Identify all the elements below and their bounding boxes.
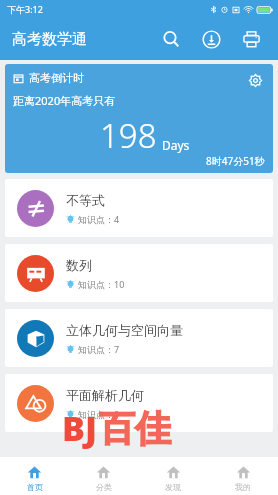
button[interactable]: Download: [194, 22, 228, 56]
button[interactable]: 高考倒计时: [5, 64, 273, 173]
staticText: 198: [100, 113, 157, 158]
staticText: 8时47分51秒: [206, 154, 265, 168]
staticText: 知识点：7: [78, 343, 120, 355]
button[interactable]: 发现: [138, 457, 208, 495]
button[interactable]: 数列: [5, 244, 273, 302]
staticText: 知识点：4: [78, 213, 120, 225]
button[interactable]: Print: [234, 22, 268, 56]
staticText: 不等式: [66, 192, 105, 208]
button[interactable]: 分类: [69, 457, 138, 495]
staticText: 高考倒计时: [29, 71, 84, 85]
button[interactable]: 不等式: [5, 179, 273, 237]
staticText: 知识点：9: [78, 408, 120, 420]
staticText: 我的: [235, 482, 251, 492]
staticText: 下午3:12: [7, 3, 43, 15]
button[interactable]: 平面解析几何: [5, 374, 273, 432]
staticText: 百佳: [99, 406, 171, 451]
button[interactable]: 首页: [0, 457, 69, 495]
button[interactable]: 立体几何与空间向量: [5, 309, 273, 367]
button[interactable]: Settings: [243, 68, 267, 92]
staticText: 发现: [165, 482, 181, 492]
button[interactable]: 我的: [208, 457, 278, 495]
staticText: 数列: [66, 257, 92, 273]
staticText: BJ: [62, 405, 97, 451]
staticText: 距离2020年高考只有: [13, 93, 116, 108]
button[interactable]: Search: [154, 22, 188, 56]
staticText: 平面解析几何: [66, 387, 144, 403]
staticText: 知识点：10: [78, 278, 125, 290]
staticText: 立体几何与空间向量: [66, 322, 183, 338]
staticText: Days: [162, 137, 190, 153]
staticText: 首页: [27, 482, 43, 492]
staticText: 分类: [96, 482, 112, 492]
staticText: 高考数学通: [12, 30, 87, 49]
